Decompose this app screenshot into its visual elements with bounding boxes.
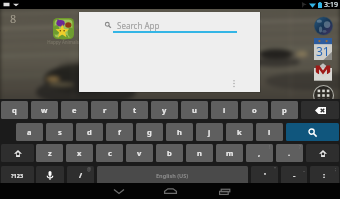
- staticText: m: [226, 148, 234, 158]
- button[interactable]: Voice input: [36, 166, 64, 184]
- staticText: ;: [335, 166, 337, 172]
- staticText: k: [237, 127, 242, 137]
- button[interactable]: Search: [286, 123, 339, 141]
- staticText: !: [269, 144, 271, 150]
- staticText: Happy Animals: [42, 39, 84, 45]
- button[interactable]: :: [310, 166, 339, 184]
- staticText: q: [12, 105, 17, 115]
- button[interactable]: q: [1, 101, 28, 119]
- staticText: /: [79, 170, 83, 180]
- staticText: y: [162, 105, 167, 115]
- button[interactable]: t: [121, 101, 148, 119]
- button[interactable]: Backspace: [301, 101, 339, 119]
- button[interactable]: d: [76, 123, 103, 141]
- staticText: @: [87, 166, 92, 172]
- button[interactable]: Shift: [1, 144, 34, 162]
- staticText: _: [303, 166, 305, 172]
- button[interactable]: s: [46, 123, 73, 141]
- staticText: h: [177, 127, 182, 137]
- staticText: u: [192, 105, 197, 115]
- button[interactable]: y: [151, 101, 178, 119]
- button[interactable]: Home: [159, 183, 181, 199]
- button[interactable]: -: [281, 166, 307, 184]
- staticText: r: [103, 105, 107, 115]
- staticText: a: [27, 127, 32, 137]
- button[interactable]: p: [271, 101, 298, 119]
- staticText: l: [268, 127, 271, 137]
- button[interactable]: f: [106, 123, 133, 141]
- button[interactable]: Browser: [314, 16, 333, 36]
- button[interactable]: Recents: [214, 183, 236, 199]
- staticText: 3:19: [324, 0, 338, 9]
- button[interactable]: w: [31, 101, 58, 119]
- staticText: j: [208, 127, 211, 137]
- staticText: t: [133, 105, 137, 115]
- staticText: p: [282, 105, 287, 115]
- button[interactable]: ,: [246, 144, 273, 162]
- staticText: b: [167, 148, 172, 158]
- staticText: 8: [10, 11, 17, 26]
- button[interactable]: /: [67, 166, 94, 184]
- button[interactable]: .: [276, 144, 303, 162]
- staticText: i: [223, 105, 226, 115]
- button[interactable]: Apps: [313, 85, 334, 106]
- button[interactable]: English (US): [97, 166, 248, 184]
- button[interactable]: k: [226, 123, 253, 141]
- staticText: -: [293, 170, 296, 180]
- button[interactable]: j: [196, 123, 223, 141]
- button[interactable]: z: [36, 144, 63, 162]
- button[interactable]: e: [61, 101, 88, 119]
- staticText: e: [72, 105, 77, 115]
- staticText: x: [77, 148, 82, 158]
- staticText: ': [264, 170, 266, 180]
- button[interactable]: Back: [108, 183, 130, 199]
- button[interactable]: More options: [229, 76, 239, 90]
- staticText: f: [118, 127, 121, 137]
- button[interactable]: Calendar: [314, 38, 332, 60]
- button[interactable]: a: [16, 123, 43, 141]
- button[interactable]: h: [166, 123, 193, 141]
- staticText: s: [58, 127, 62, 137]
- staticText: .: [288, 148, 291, 158]
- button[interactable]: v: [126, 144, 153, 162]
- button[interactable]: l: [256, 123, 283, 141]
- button[interactable]: o: [241, 101, 268, 119]
- staticText: ?123: [11, 172, 24, 179]
- button[interactable]: u: [181, 101, 208, 119]
- button[interactable]: b: [156, 144, 183, 162]
- button[interactable]: c: [96, 144, 123, 162]
- staticText: Search App: [117, 20, 160, 31]
- staticText: 31: [316, 43, 330, 59]
- button[interactable]: Happy Animals app: [53, 18, 74, 39]
- button[interactable]: x: [66, 144, 93, 162]
- button[interactable]: g: [136, 123, 163, 141]
- staticText: ,: [258, 148, 261, 158]
- staticText: g: [147, 127, 152, 137]
- button[interactable]: i: [211, 101, 238, 119]
- staticText: ?: [299, 144, 301, 150]
- button[interactable]: r: [91, 101, 118, 119]
- button[interactable]: Gmail: [314, 62, 332, 82]
- staticText: o: [252, 105, 257, 115]
- button[interactable]: ?123: [1, 166, 34, 184]
- staticText: ": [274, 166, 276, 172]
- staticText: n: [197, 148, 202, 158]
- button[interactable]: m: [216, 144, 243, 162]
- staticText: d: [87, 127, 92, 137]
- button[interactable]: Shift: [306, 144, 339, 162]
- staticText: English (US): [156, 172, 189, 179]
- staticText: z: [48, 148, 52, 158]
- button[interactable]: n: [186, 144, 213, 162]
- button[interactable]: ': [251, 166, 278, 184]
- staticText: c: [108, 148, 112, 158]
- staticText: w: [41, 105, 48, 115]
- staticText: v: [137, 148, 142, 158]
- staticText: :: [323, 170, 326, 180]
